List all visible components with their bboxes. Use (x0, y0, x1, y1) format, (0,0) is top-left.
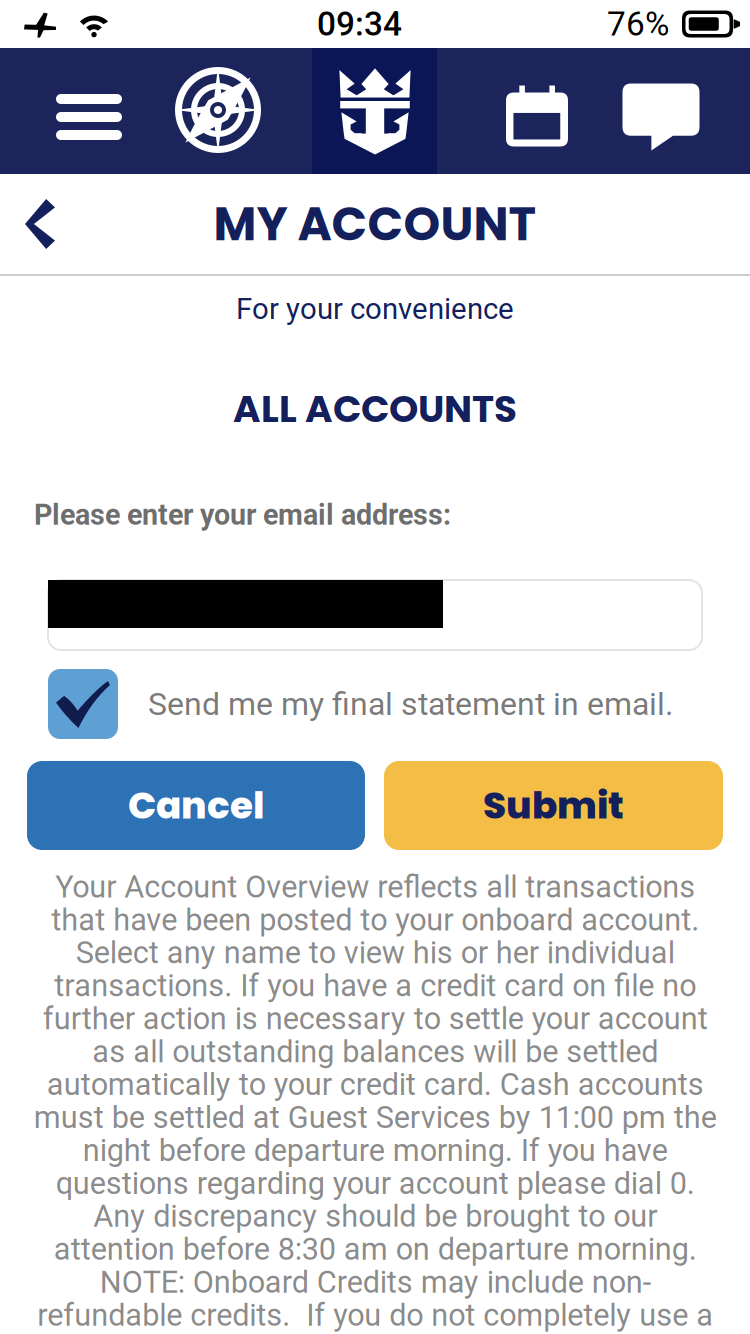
button[interactable]: Home (312, 48, 437, 174)
staticText: Please enter your email address: (34, 498, 451, 532)
staticText: Send me my final statement in email. (148, 685, 673, 723)
button[interactable]: Menu (0, 48, 156, 174)
staticText: Cancel (128, 779, 264, 832)
button[interactable]: Cancel (27, 761, 365, 850)
button[interactable]: Explore (156, 48, 312, 174)
button[interactable]: Calendar (437, 48, 594, 174)
staticText: Your Account Overview reflects all trans… (33, 869, 716, 1333)
button[interactable]: Send me my final statement in email (48, 669, 118, 739)
staticText: 76% (607, 4, 669, 44)
staticText: For your convenience (236, 292, 514, 326)
staticText: 09:34 (317, 4, 402, 44)
button[interactable]: Submit (384, 761, 723, 850)
staticText: Submit (483, 779, 624, 832)
button[interactable]: Messages (594, 48, 750, 174)
staticText: ALL ACCOUNTS (233, 383, 517, 435)
button[interactable]: Back (0, 174, 80, 274)
staticText: MY ACCOUNT (213, 191, 536, 257)
